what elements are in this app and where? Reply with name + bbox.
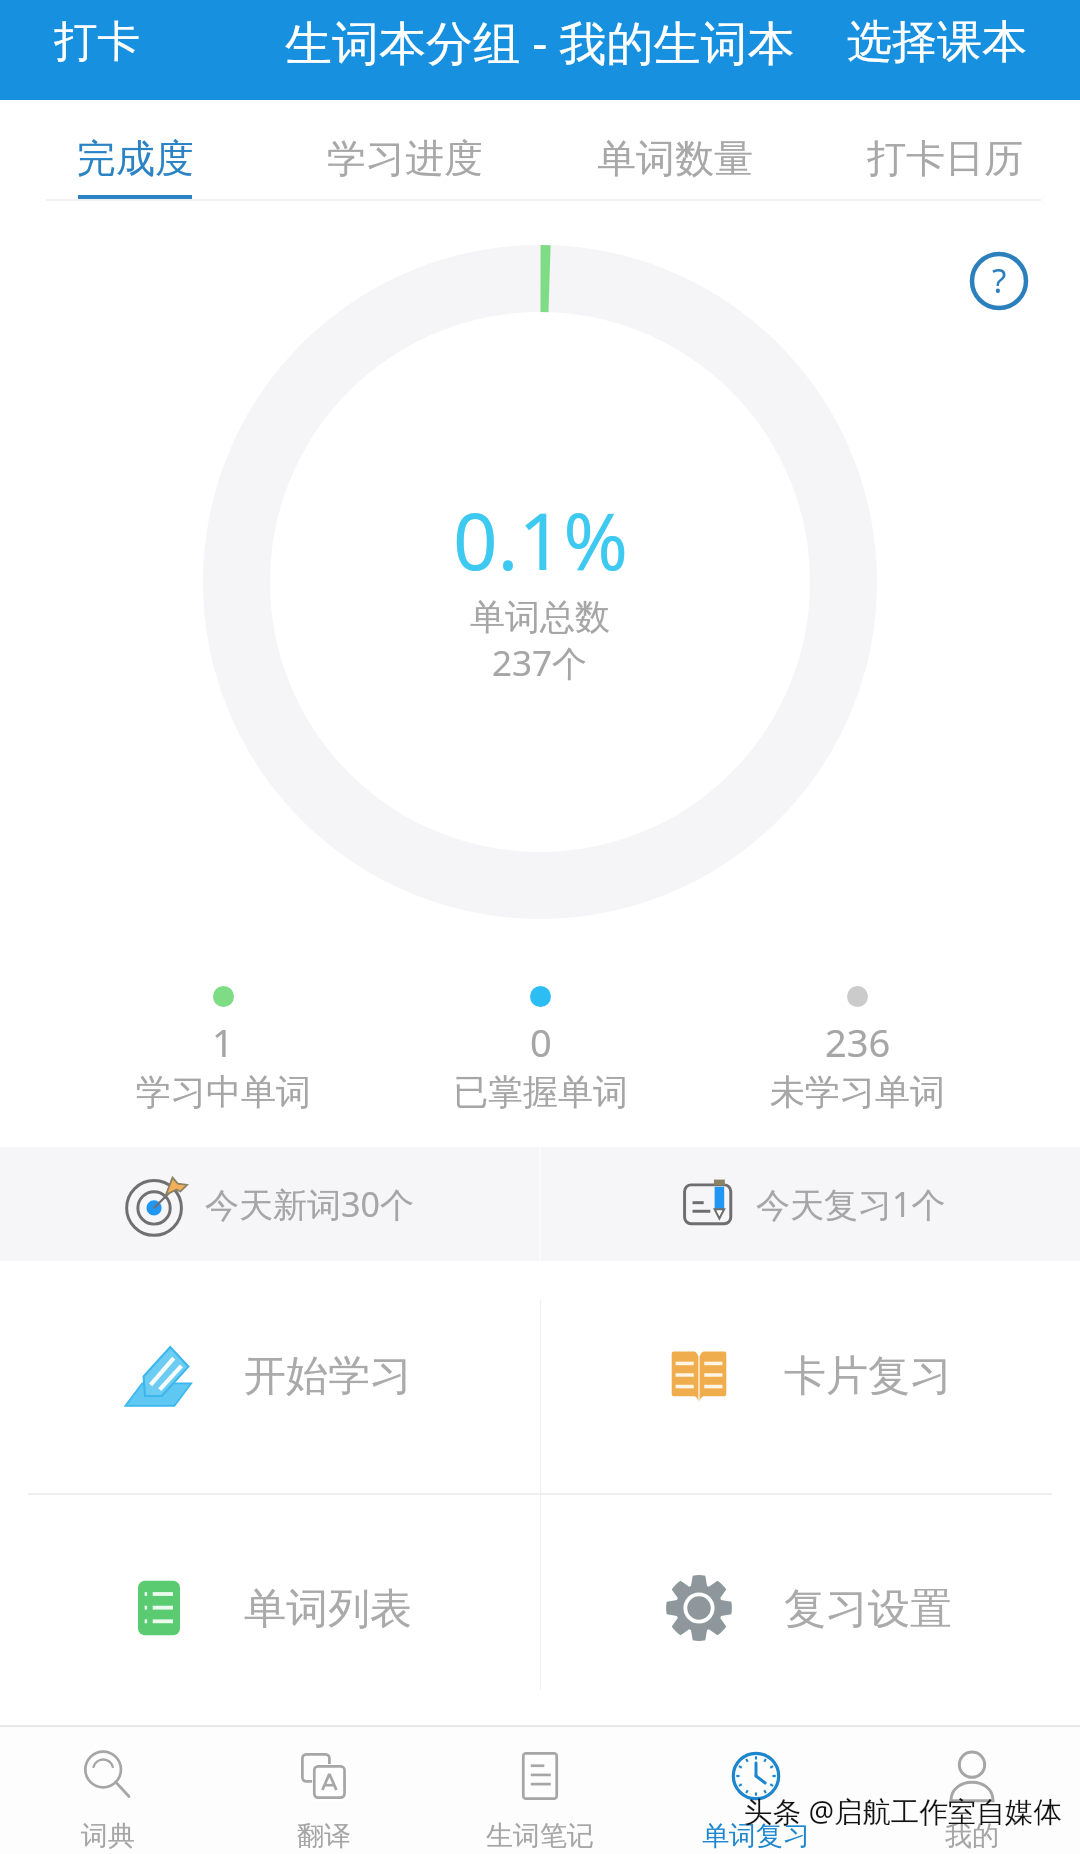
staticText: 卡片复习	[784, 1350, 952, 1403]
staticText: 单词复习	[702, 1819, 810, 1853]
staticText: 今天新词30个	[205, 1181, 414, 1227]
staticText: 今天复习1个	[756, 1181, 946, 1227]
staticText: 开始学习	[244, 1350, 412, 1403]
staticText: 选择课本	[847, 14, 1027, 71]
button[interactable]: 完成度	[0, 100, 270, 210]
staticText: 已掌握单词	[453, 1070, 628, 1114]
staticText: 1	[212, 1016, 234, 1068]
staticText: 生词笔记	[486, 1819, 594, 1853]
button[interactable]: 今天新词30个	[0, 1147, 539, 1261]
button[interactable]: 卡片复习	[540, 1258, 1080, 1491]
staticText: 0.1%	[453, 487, 628, 593]
button[interactable]: 复习设置	[540, 1491, 1080, 1724]
staticText: 复习设置	[784, 1583, 952, 1636]
staticText: 我的	[945, 1819, 999, 1853]
button[interactable]: 打卡	[36, 0, 158, 100]
button[interactable]: 0	[382, 980, 699, 1114]
button[interactable]: 我的	[864, 1727, 1080, 1854]
staticText: 单词总数	[470, 595, 610, 639]
button[interactable]: 单词复习	[648, 1727, 864, 1854]
staticText: 未学习单词	[770, 1070, 945, 1114]
button[interactable]: 单词数量	[540, 100, 810, 210]
button[interactable]: 翻译	[216, 1727, 432, 1854]
staticText: 打卡	[54, 15, 140, 69]
staticText: 完成度	[77, 134, 194, 183]
staticText: 翻译	[297, 1819, 351, 1853]
staticText: 学习中单词	[136, 1070, 311, 1114]
staticText: 生词本分组 - 我的生词本	[285, 10, 795, 74]
button[interactable]: 打卡日历	[810, 100, 1080, 210]
staticText: 单词列表	[244, 1583, 412, 1636]
button[interactable]: 今天复习1个	[541, 1147, 1080, 1261]
staticText: 0	[530, 1016, 552, 1068]
button[interactable]: 词典	[0, 1727, 216, 1854]
button[interactable]: 学习进度	[270, 100, 540, 210]
staticText: ?	[992, 258, 1007, 303]
button[interactable]: Help	[963, 245, 1035, 317]
staticText: 打卡日历	[867, 134, 1023, 183]
button[interactable]: 选择课本	[829, 0, 1045, 100]
staticText: 学习进度	[327, 134, 483, 183]
staticText: 词典	[81, 1819, 135, 1853]
button[interactable]: 1	[64, 980, 382, 1114]
staticText: 236	[825, 1016, 891, 1068]
button[interactable]: 生词笔记	[432, 1727, 648, 1854]
staticText: 单词数量	[597, 134, 753, 183]
button[interactable]: 开始学习	[0, 1258, 540, 1491]
staticText: 237个	[492, 639, 588, 687]
staticText: 头条 @启航工作室自媒体	[744, 1792, 1063, 1831]
button[interactable]: 单词列表	[0, 1491, 540, 1724]
button[interactable]: 236	[699, 980, 1016, 1114]
